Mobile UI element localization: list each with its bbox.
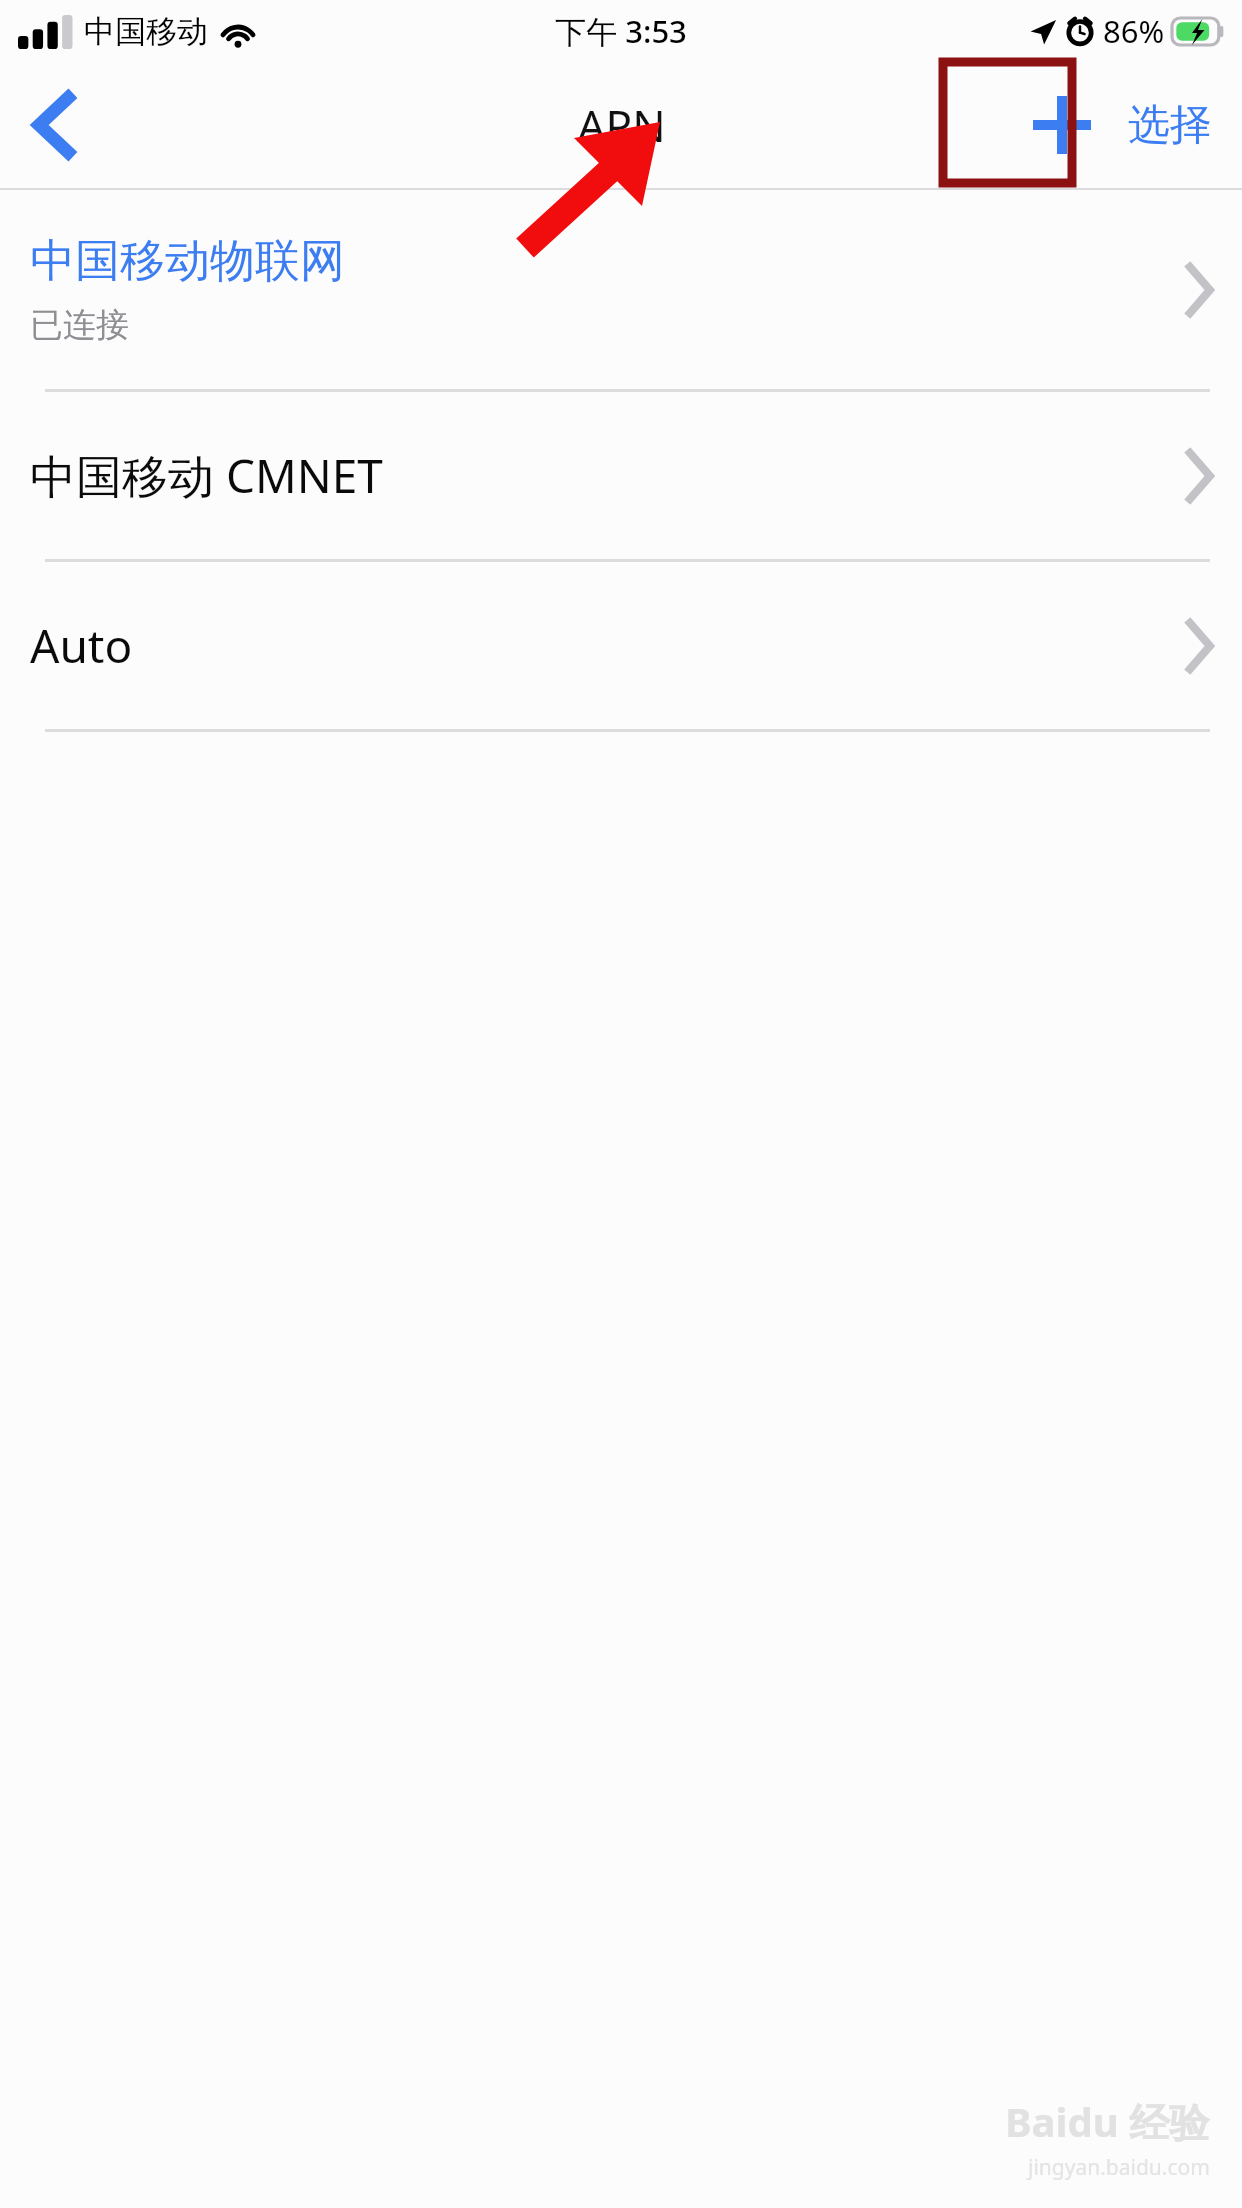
button[interactable]: Auto xyxy=(0,562,1242,729)
staticText: 86% xyxy=(1103,10,1165,52)
staticText: 已连接 xyxy=(30,304,129,346)
staticText: 下午 3:53 xyxy=(555,10,687,52)
staticText: Baidu 经验 xyxy=(1005,2094,1210,2149)
staticText: 中国移动 xyxy=(84,12,208,51)
button[interactable]: 选择 xyxy=(1118,62,1242,188)
staticText: 选择 xyxy=(1128,99,1212,152)
staticText: 中国移动物联网 xyxy=(30,233,345,290)
button[interactable]: 返回 xyxy=(0,62,110,188)
staticText: 中国移动 CMNET xyxy=(30,444,1186,507)
button[interactable]: 中国移动物联网 xyxy=(0,190,1242,389)
button[interactable]: 中国移动 CMNET xyxy=(0,392,1242,559)
staticText: Auto xyxy=(30,614,1186,677)
staticText: jingyan.baidu.com xyxy=(1028,2153,1210,2182)
staticText: APN xyxy=(577,95,666,155)
button[interactable]: 添加 APN xyxy=(1006,66,1118,184)
